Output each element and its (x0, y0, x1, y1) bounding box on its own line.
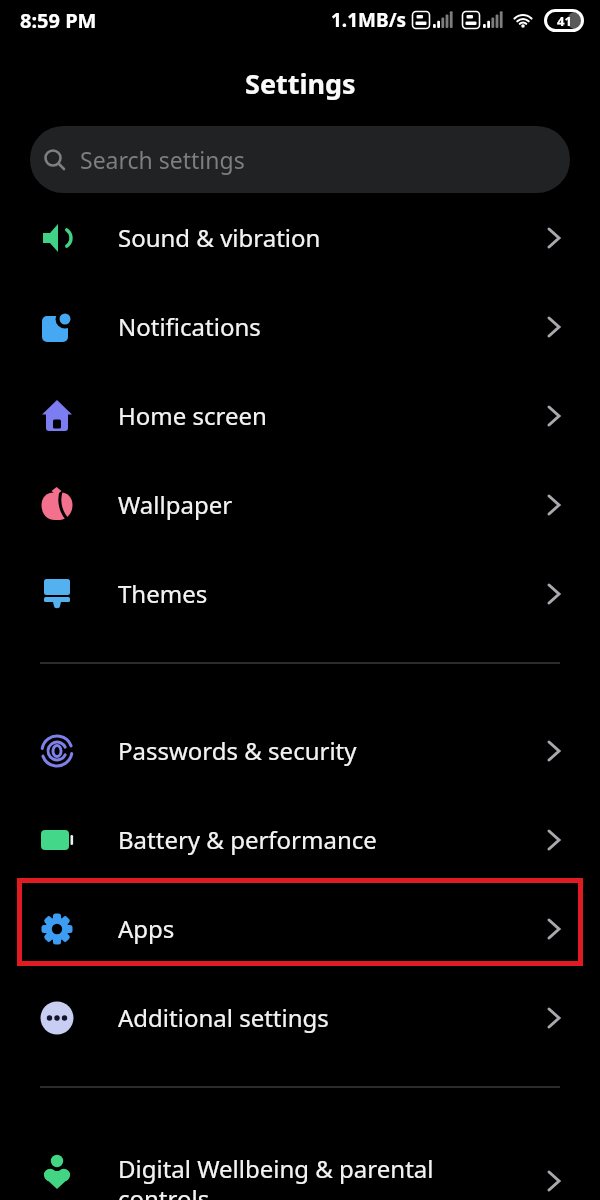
staticText: Additional settings (118, 1001, 547, 1034)
button[interactable]: Passwords & security (0, 706, 600, 795)
button[interactable]: Battery & performance (0, 795, 600, 884)
staticText: Notifications (118, 310, 547, 343)
staticText: 1.1MB/s (331, 7, 407, 33)
staticText: Themes (118, 577, 547, 610)
button[interactable]: Wallpaper (0, 460, 600, 549)
button[interactable]: Additional settings (0, 973, 600, 1062)
button[interactable]: Sound & vibration (0, 193, 600, 282)
staticText: Battery & performance (118, 823, 547, 856)
button[interactable]: Apps (0, 884, 600, 973)
button[interactable]: Themes (0, 549, 600, 638)
button[interactable]: Home screen (0, 371, 600, 460)
button[interactable]: Search settings (30, 126, 570, 193)
staticText: Digital Wellbeing & parental controls (118, 1152, 547, 1200)
staticText: Home screen (118, 399, 547, 432)
button[interactable]: Digital Wellbeing & parental controls (0, 1130, 600, 1200)
staticText: Search settings (80, 144, 245, 175)
staticText: Sound & vibration (118, 221, 547, 254)
staticText: Apps (118, 912, 547, 945)
staticText: Wallpaper (118, 488, 547, 521)
staticText: 8:59 PM (20, 7, 97, 34)
staticText: 41 (557, 12, 572, 30)
staticText: Settings (245, 65, 356, 102)
staticText: Passwords & security (118, 734, 547, 767)
button[interactable]: Notifications (0, 282, 600, 371)
